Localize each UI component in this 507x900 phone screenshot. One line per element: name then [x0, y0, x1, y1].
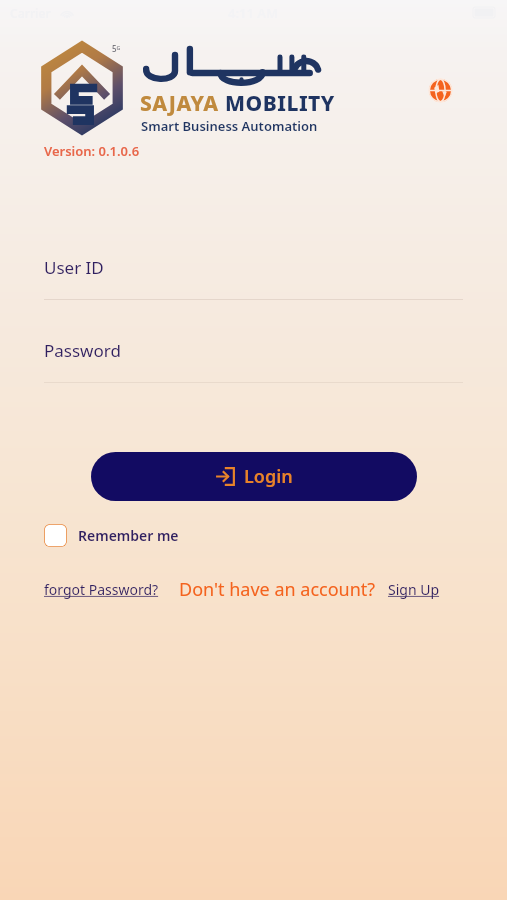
staticText: Sign Up [388, 580, 440, 599]
button[interactable]: Remember me [40, 518, 179, 552]
button[interactable]: Sign Up [388, 580, 440, 599]
button[interactable]: Password [44, 339, 463, 383]
staticText: Remember me [78, 526, 179, 545]
staticText: Don't have an account? [179, 577, 376, 602]
button[interactable]: Login [91, 452, 417, 501]
staticText: Password [44, 339, 121, 362]
button[interactable]: Change language [424, 74, 456, 106]
staticText: MOBILITY [225, 89, 335, 118]
staticText: Version: 0.1.0.6 [44, 142, 140, 160]
staticText: User ID [44, 256, 104, 279]
staticText: Smart Business Automation [141, 117, 318, 135]
button[interactable]: forgot Password? [44, 580, 159, 599]
staticText: 5ᴳ [112, 43, 121, 54]
staticText: forgot Password? [44, 580, 159, 599]
staticText: SAJAYA [140, 89, 219, 118]
staticText: Login [244, 464, 293, 489]
button[interactable]: User ID [44, 256, 463, 300]
